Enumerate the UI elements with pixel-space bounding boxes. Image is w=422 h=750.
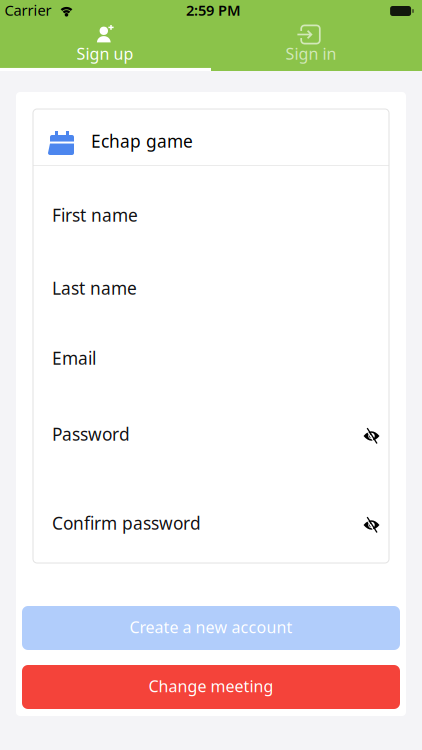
- staticText: Change meeting: [148, 675, 273, 697]
- staticText: Email: [52, 346, 96, 369]
- button[interactable]: Show password: [363, 425, 380, 442]
- staticText: Last name: [52, 276, 137, 299]
- staticText: First name: [52, 203, 138, 226]
- button[interactable]: Create a new account: [22, 606, 400, 650]
- staticText: Create a new account: [129, 616, 292, 638]
- staticText: 2:59 PM: [186, 0, 241, 20]
- staticText: Echap game: [91, 129, 193, 152]
- staticText: Carrier: [4, 0, 51, 20]
- staticText: Sign up: [76, 43, 133, 64]
- staticText: Password: [52, 422, 130, 445]
- staticText: Sign in: [285, 43, 336, 64]
- button[interactable]: Show password: [363, 514, 380, 531]
- button[interactable]: Change meeting: [22, 665, 400, 709]
- button[interactable]: Sign up: [0, 20, 211, 68]
- button[interactable]: Sign in: [211, 20, 422, 68]
- staticText: Confirm password: [52, 511, 201, 534]
